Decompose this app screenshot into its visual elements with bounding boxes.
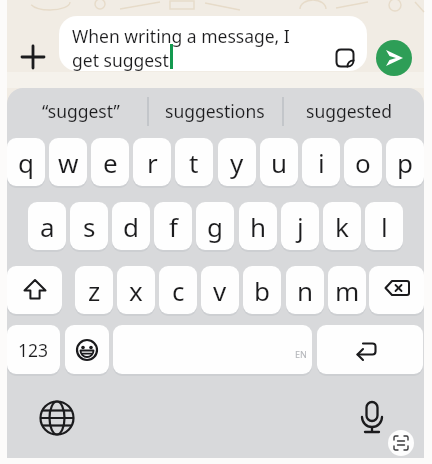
staticText: suggested xyxy=(306,99,392,123)
button[interactable]: c xyxy=(159,266,197,314)
staticText: EN xyxy=(295,348,307,360)
staticText: a xyxy=(40,209,55,244)
button[interactable]: m xyxy=(328,266,366,314)
button[interactable]: h xyxy=(239,202,277,250)
staticText: x xyxy=(129,273,143,308)
button[interactable]: j xyxy=(281,202,319,250)
button[interactable]: k xyxy=(323,202,361,250)
button[interactable]: d xyxy=(112,202,150,250)
button[interactable] xyxy=(37,398,77,438)
staticText: k xyxy=(335,209,349,244)
button[interactable]: suggested xyxy=(282,88,416,134)
button[interactable]: w xyxy=(49,138,87,186)
button[interactable]: x xyxy=(117,266,155,314)
button[interactable]: n xyxy=(286,266,324,314)
staticText: When writing a message, I xyxy=(72,24,290,48)
button[interactable]: y xyxy=(218,138,256,186)
staticText: n xyxy=(297,273,314,308)
staticText: j xyxy=(297,209,304,244)
staticText: r xyxy=(147,145,158,180)
button[interactable]: suggestions xyxy=(148,88,282,134)
button[interactable] xyxy=(7,266,62,314)
button[interactable]: o xyxy=(344,138,382,186)
button[interactable]: f xyxy=(154,202,192,250)
button[interactable]: a xyxy=(28,202,66,250)
button[interactable] xyxy=(388,430,414,456)
button[interactable]: q xyxy=(7,138,45,186)
staticText: s xyxy=(83,209,96,244)
staticText: d xyxy=(123,209,139,244)
staticText: m xyxy=(335,273,360,308)
staticText: p xyxy=(397,145,413,180)
staticText: y xyxy=(230,145,244,180)
staticText: suggestions xyxy=(165,99,265,123)
staticText: z xyxy=(88,273,101,308)
button[interactable] xyxy=(352,397,392,437)
button[interactable]: g xyxy=(196,202,234,250)
button[interactable]: z xyxy=(75,266,113,314)
staticText: f xyxy=(169,209,178,244)
staticText: b xyxy=(254,273,270,308)
button[interactable] xyxy=(317,325,423,374)
staticText: c xyxy=(172,273,185,308)
button[interactable]: i xyxy=(302,138,340,186)
staticText: w xyxy=(58,145,79,180)
button[interactable]: s xyxy=(70,202,108,250)
button[interactable] xyxy=(376,40,412,76)
button[interactable] xyxy=(369,266,424,314)
staticText: o xyxy=(355,145,371,180)
button[interactable]: When writing a message, I xyxy=(59,16,367,71)
staticText: “suggest” xyxy=(42,99,120,123)
staticText: g xyxy=(207,209,223,244)
button[interactable] xyxy=(11,35,55,79)
button[interactable]: l xyxy=(365,202,403,250)
button[interactable] xyxy=(65,325,109,374)
button[interactable]: v xyxy=(201,266,239,314)
button[interactable]: u xyxy=(260,138,298,186)
staticText: e xyxy=(103,145,118,180)
staticText: 123 xyxy=(18,338,49,362)
staticText: t xyxy=(189,145,199,180)
staticText: i xyxy=(318,145,325,180)
staticText: v xyxy=(213,273,227,308)
button[interactable]: t xyxy=(175,138,213,186)
staticText: get suggest xyxy=(72,48,169,71)
button[interactable]: “suggest” xyxy=(14,88,148,134)
button[interactable]: p xyxy=(386,138,424,186)
staticText: l xyxy=(381,209,388,244)
button[interactable]: b xyxy=(243,266,281,314)
staticText: u xyxy=(271,145,288,180)
button[interactable]: r xyxy=(133,138,171,186)
staticText: h xyxy=(250,209,267,244)
button[interactable]: e xyxy=(91,138,129,186)
button[interactable]: EN xyxy=(113,325,312,374)
staticText: q xyxy=(18,145,34,180)
button[interactable]: 123 xyxy=(7,325,60,374)
